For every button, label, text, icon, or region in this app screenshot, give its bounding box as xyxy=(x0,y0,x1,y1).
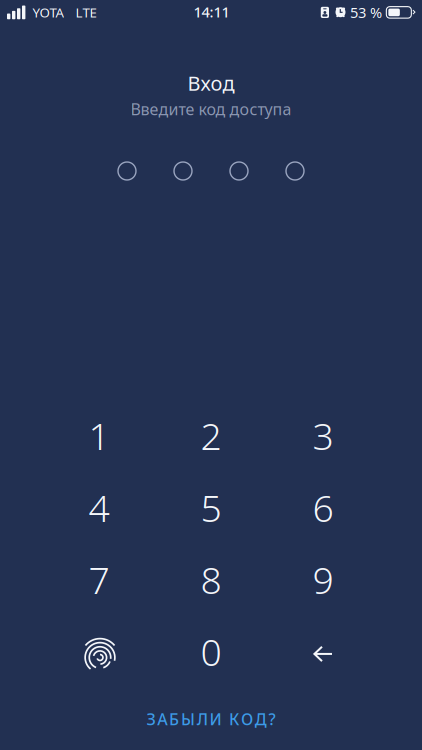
staticText: 8 xyxy=(200,555,221,604)
staticText: 3 xyxy=(312,411,333,460)
staticText: 2 xyxy=(200,411,221,460)
button[interactable]: 2 xyxy=(163,401,259,469)
button[interactable]: 9 xyxy=(275,545,371,613)
staticText: Вход xyxy=(187,70,234,96)
button[interactable]: 0 xyxy=(163,617,259,685)
staticText: 4 xyxy=(88,483,109,532)
staticText: 1 xyxy=(88,411,109,460)
staticText: 0 xyxy=(200,627,221,676)
staticText: Введите код доступа xyxy=(130,98,291,120)
button[interactable]: 5 xyxy=(163,473,259,541)
button[interactable]: 8 xyxy=(163,545,259,613)
button[interactable]: Touch ID xyxy=(51,617,147,685)
staticText: ЗАБЫЛИ КОД? xyxy=(146,708,275,730)
staticText: LTE xyxy=(75,3,96,21)
staticText: 14:11 xyxy=(193,2,229,22)
staticText: YOTA xyxy=(32,3,64,21)
button[interactable]: 1 xyxy=(51,401,147,469)
button[interactable]: 6 xyxy=(275,473,371,541)
button[interactable]: 7 xyxy=(51,545,147,613)
button[interactable]: 4 xyxy=(51,473,147,541)
button[interactable]: ЗАБЫЛИ КОД? xyxy=(91,701,331,737)
staticText: 7 xyxy=(88,555,109,604)
button[interactable]: Delete xyxy=(275,617,371,685)
staticText: 6 xyxy=(312,483,333,532)
staticText: 5 xyxy=(200,483,221,532)
button[interactable]: 3 xyxy=(275,401,371,469)
staticText: 53 % xyxy=(350,3,382,22)
staticText: 9 xyxy=(312,555,333,604)
